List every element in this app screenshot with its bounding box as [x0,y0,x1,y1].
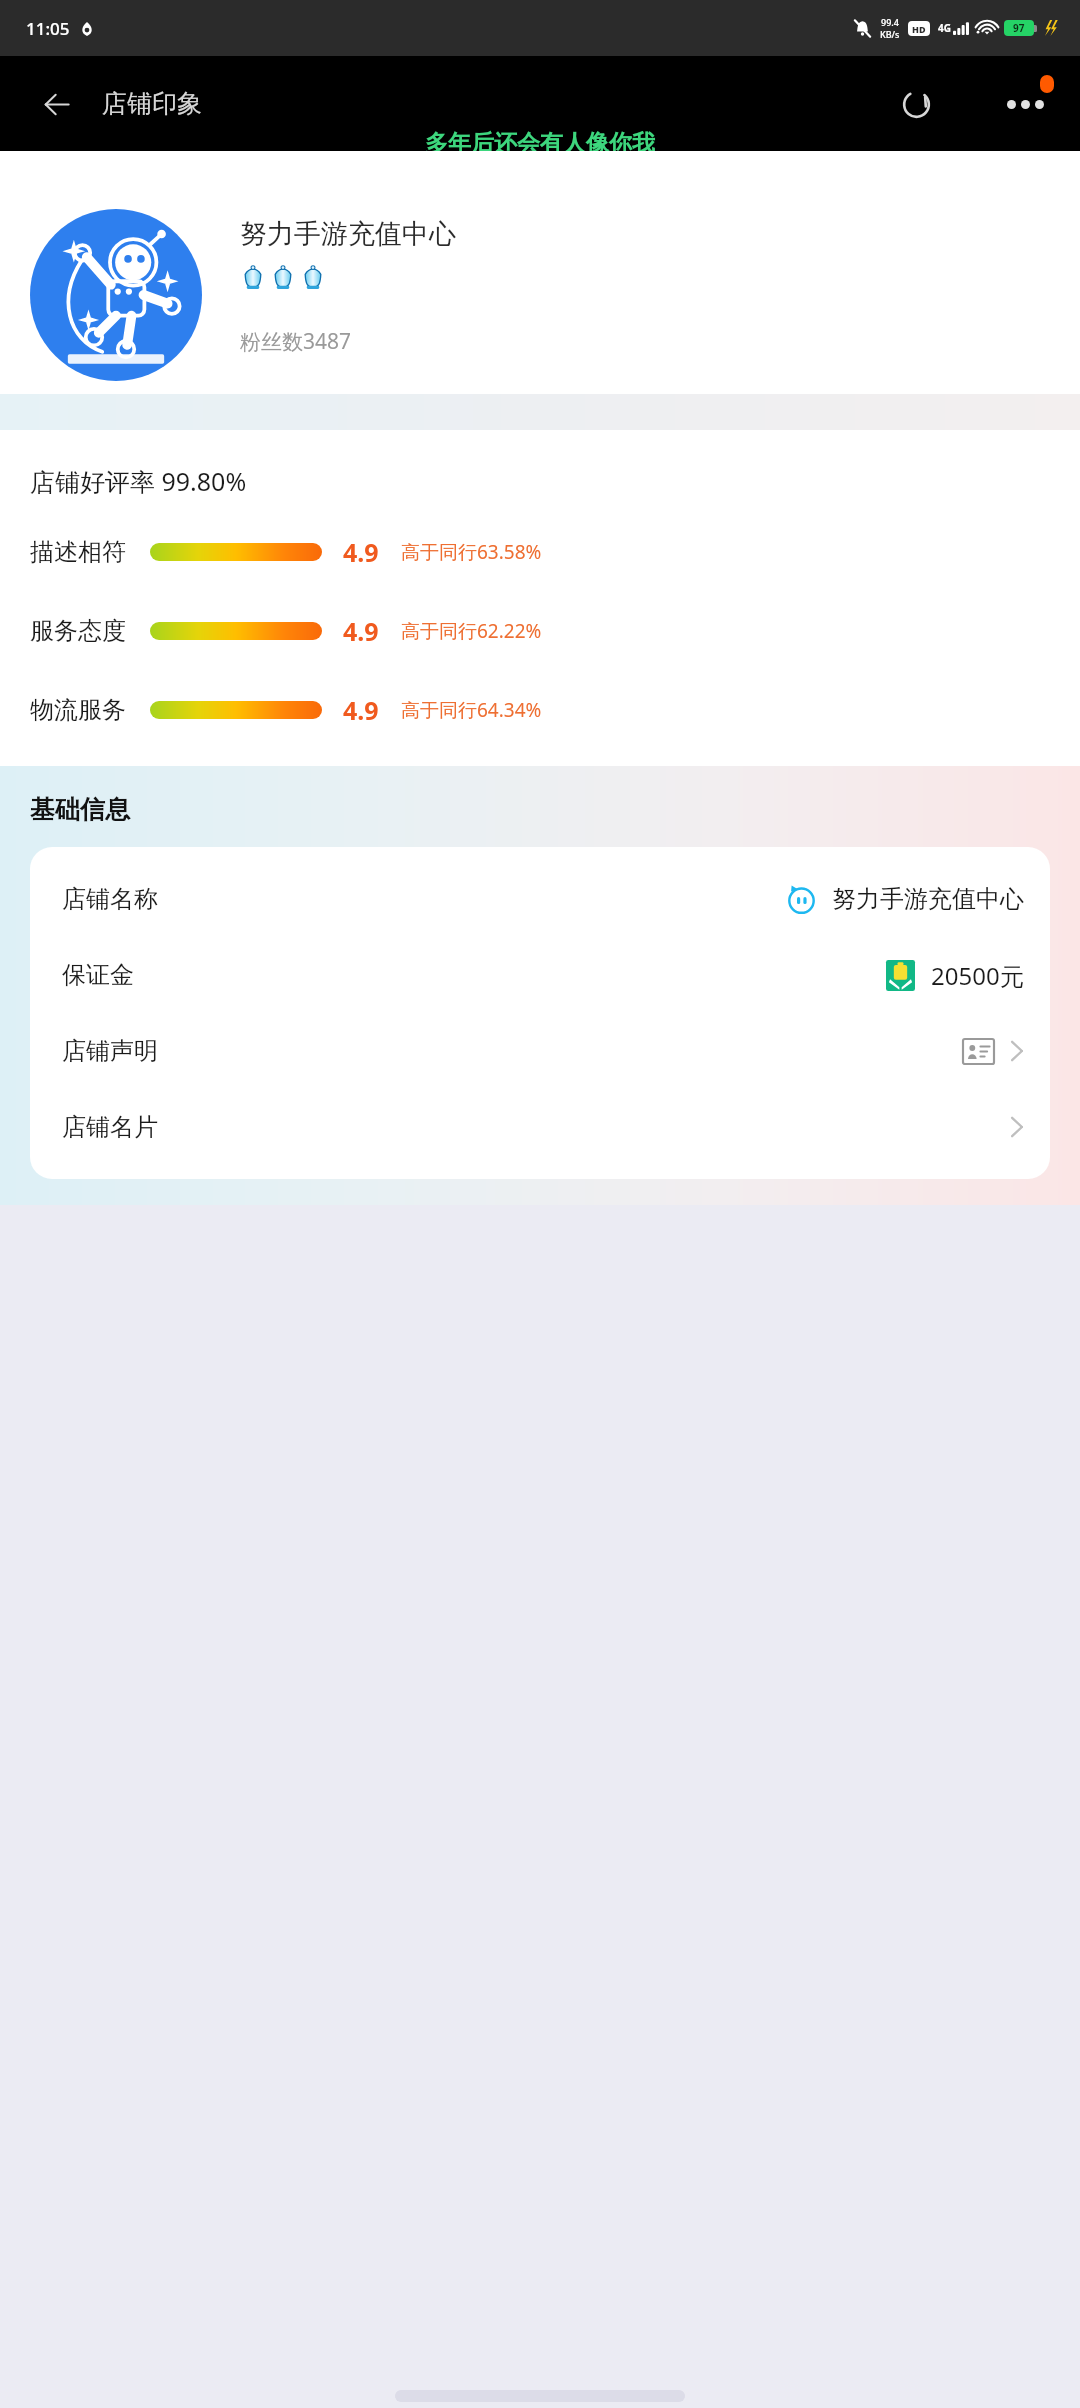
staticText: 店铺印象 [102,88,202,119]
staticText: 服务态度 [30,616,126,646]
button[interactable]: 物流服务 [0,690,1080,730]
button[interactable]: Shop avatar [30,209,202,381]
staticText: 描述相符 [30,537,126,567]
button[interactable]: Back [30,78,82,130]
staticText: 物流服务 [30,695,126,725]
staticText: 11:05 [26,17,70,40]
staticText: 多年后还会有人像你我 [425,129,655,158]
button[interactable]: 描述相符 [0,532,1080,572]
button[interactable]: 服务态度 [0,611,1080,651]
staticText: 努力手游充值中心 [240,217,456,251]
staticText: 保证金 [62,960,134,990]
staticText: 店铺声明 [62,1036,158,1066]
staticText: 高于同行63.58% [401,539,542,565]
staticText: 4.9 [343,614,379,648]
staticText: 4G [938,21,951,35]
staticText: KB/s [880,28,900,40]
staticText: 高于同行64.34% [401,697,542,723]
button[interactable]: Refresh [887,75,945,133]
staticText: 粉丝数3487 [240,327,352,356]
staticText: HD [912,23,926,35]
staticText: 99.4 [881,16,899,28]
button[interactable]: 保证金 [30,937,1050,1013]
staticText: 店铺好评率 99.80% [30,464,247,498]
staticText: 努力手游充值中心 [832,884,1024,914]
staticText: 店铺名称 [62,884,158,914]
staticText: 基础信息 [30,794,130,825]
staticText: 4.9 [343,693,379,727]
button[interactable]: 店铺声明 [30,1013,1050,1089]
button[interactable]: 店铺名片 [30,1089,1050,1165]
button[interactable]: 店铺名称 [30,861,1050,937]
staticText: 4.9 [343,535,379,569]
staticText: 20500元 [931,959,1024,992]
staticText: 高于同行62.22% [401,618,542,644]
button[interactable]: More options [994,73,1056,135]
staticText: 97 [1013,21,1025,35]
staticText: 店铺名片 [62,1112,158,1142]
